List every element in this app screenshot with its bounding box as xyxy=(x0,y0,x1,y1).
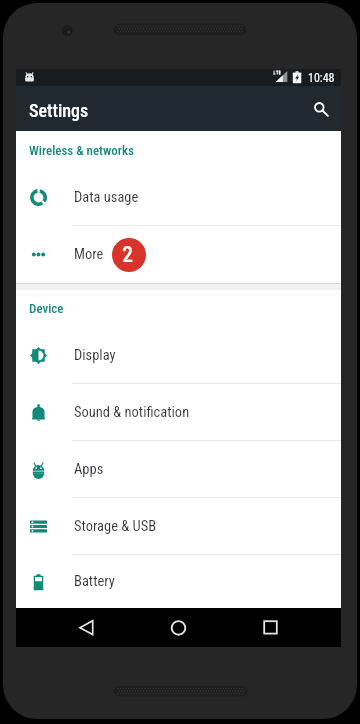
button[interactable]: Home xyxy=(166,615,192,641)
button[interactable]: Storage & USB xyxy=(16,498,341,555)
staticText: Wireless & networks xyxy=(29,143,134,158)
staticText: Display xyxy=(74,347,116,364)
staticText: 2 xyxy=(122,242,133,268)
button[interactable]: Sound & notification xyxy=(16,384,341,441)
button[interactable]: Recent apps xyxy=(257,615,283,641)
button[interactable]: Back xyxy=(74,615,100,641)
staticText: Storage & USB xyxy=(74,518,157,535)
staticText: Device xyxy=(29,301,64,316)
staticText: Sound & notification xyxy=(74,404,190,421)
staticText: Data usage xyxy=(74,189,139,206)
staticText: More xyxy=(74,246,104,263)
button[interactable]: Search xyxy=(299,90,337,128)
button[interactable]: Battery xyxy=(16,555,341,608)
staticText: Apps xyxy=(74,461,104,478)
staticText: Battery xyxy=(74,573,115,590)
button[interactable]: Data usage xyxy=(16,169,341,226)
button[interactable]: Display xyxy=(16,327,341,384)
staticText: 10:48 xyxy=(308,71,335,85)
button[interactable]: Apps xyxy=(16,441,341,498)
button[interactable]: More xyxy=(16,226,341,283)
staticText: Settings xyxy=(29,100,89,121)
